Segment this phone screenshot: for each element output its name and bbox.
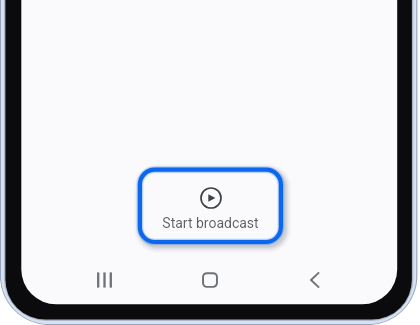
staticText: Start broadcast bbox=[162, 215, 259, 231]
button[interactable]: Back bbox=[291, 266, 339, 294]
button[interactable]: Start broadcast bbox=[138, 168, 283, 245]
button[interactable]: Recents bbox=[80, 266, 129, 294]
button[interactable]: Home bbox=[186, 266, 234, 294]
